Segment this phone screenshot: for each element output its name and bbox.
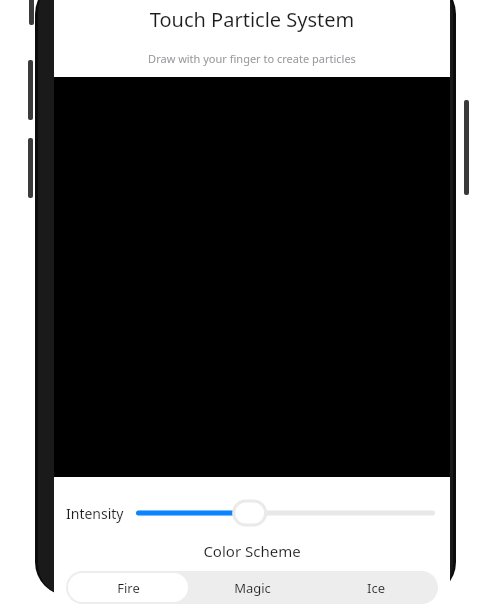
staticText: Intensity: [66, 504, 124, 523]
button[interactable]: Magic: [192, 573, 312, 602]
staticText: Color Scheme: [54, 541, 450, 561]
button[interactable]: Fire: [68, 573, 188, 602]
staticText: Draw with your finger to create particle…: [54, 51, 450, 66]
button[interactable]: Intensity slider: [136, 499, 435, 527]
staticText: Fire: [117, 579, 140, 597]
staticText: Magic: [234, 579, 271, 597]
staticText: Touch Particle System: [54, 6, 450, 33]
staticText: Ice: [367, 579, 385, 597]
button[interactable]: Ice: [316, 573, 436, 602]
